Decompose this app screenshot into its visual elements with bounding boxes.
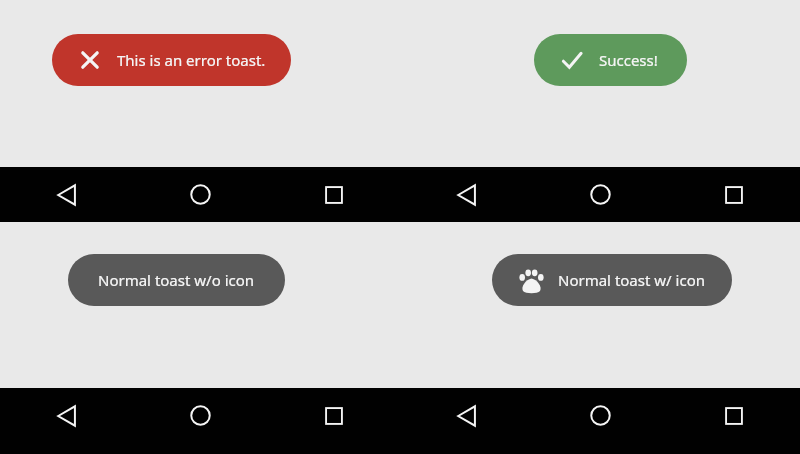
button[interactable]: Home <box>134 167 267 222</box>
button[interactable]: Success! <box>534 34 687 86</box>
button[interactable]: Recent apps <box>667 388 800 443</box>
staticText: Success! <box>599 50 658 70</box>
button[interactable]: Back <box>0 167 134 222</box>
button[interactable]: Recent apps <box>267 388 400 443</box>
button[interactable]: Recent apps <box>267 167 400 222</box>
button[interactable]: Normal toast w/o icon <box>68 254 285 306</box>
button[interactable]: Back <box>0 388 134 443</box>
button[interactable]: Back <box>400 388 534 443</box>
button[interactable]: Normal toast w/ icon <box>492 254 732 306</box>
button[interactable]: Recent apps <box>667 167 800 222</box>
staticText: Normal toast w/ icon <box>558 270 705 290</box>
button[interactable]: Home <box>134 388 267 443</box>
button[interactable]: Home <box>534 388 667 443</box>
button[interactable]: Back <box>400 167 534 222</box>
staticText: Normal toast w/o icon <box>98 270 255 290</box>
button[interactable]: Home <box>534 167 667 222</box>
button[interactable]: This is an error toast. <box>52 34 291 86</box>
staticText: This is an error toast. <box>117 50 266 70</box>
